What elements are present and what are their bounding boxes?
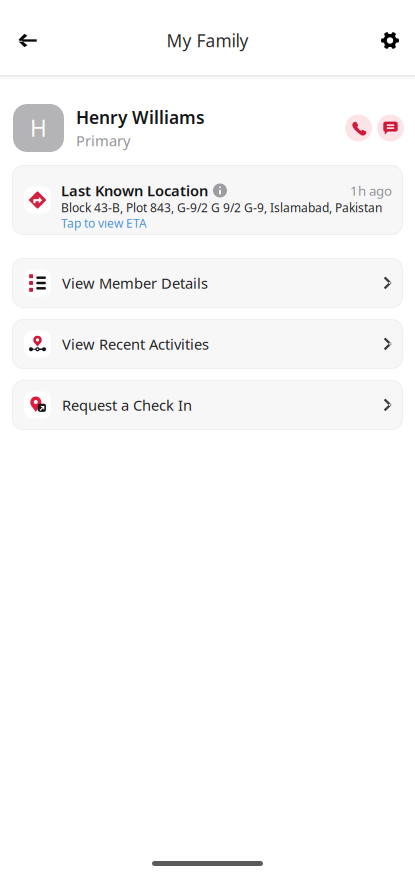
button[interactable]: View Member Details [12,258,403,308]
staticText: Block 43-B, Plot 843, G-9/2 G 9/2 G-9, I… [61,199,382,215]
button[interactable]: Settings [368,18,412,62]
staticText: H [30,113,47,143]
staticText: Tap to view ETA [61,215,147,231]
button[interactable]: Request a Check In [12,380,403,430]
button[interactable]: Last Known Location [12,165,403,235]
staticText: My Family [166,29,248,52]
staticText: View Recent Activities [62,334,209,354]
staticText: 1h ago [350,182,392,199]
button[interactable]: Message [377,114,404,141]
button[interactable]: View Recent Activities [12,319,403,369]
button[interactable]: Call [345,114,372,141]
staticText: Last Known Location [61,181,208,200]
staticText: Request a Check In [62,395,192,415]
staticText: Primary [76,131,130,150]
staticText: Henry Williams [76,106,205,129]
staticText: View Member Details [62,273,208,293]
button[interactable]: Back [4,18,52,62]
